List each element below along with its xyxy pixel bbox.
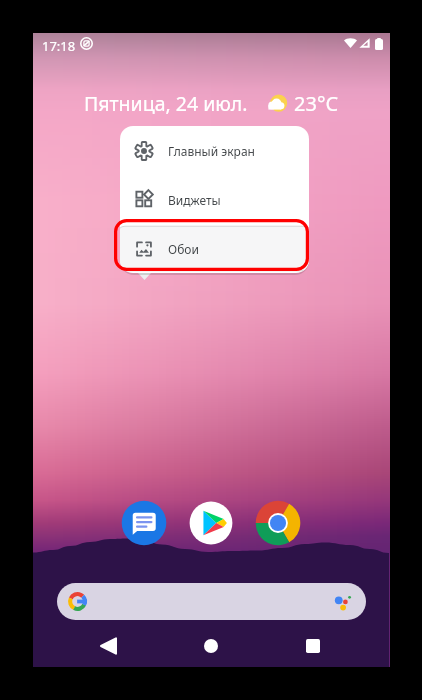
button[interactable]: Recents: [293, 626, 333, 666]
staticText: Пятница, 24 июл.: [84, 90, 248, 116]
button[interactable]: Play Store: [188, 500, 234, 546]
staticText: Виджеты: [168, 192, 221, 208]
button[interactable]: Виджеты: [120, 175, 309, 224]
button[interactable]: [57, 583, 366, 620]
button[interactable]: Chrome: [255, 500, 301, 546]
staticText: Главный экран: [168, 143, 255, 159]
button[interactable]: Back: [88, 626, 128, 666]
staticText: 17:18: [42, 37, 76, 55]
button[interactable]: Home: [191, 626, 231, 666]
button[interactable]: Обои: [120, 224, 309, 273]
staticText: Обои: [168, 241, 199, 257]
button[interactable]: Пятница, 24 июл.: [33, 90, 389, 116]
button[interactable]: Messages: [121, 500, 167, 546]
staticText: 23°C: [294, 90, 339, 116]
button[interactable]: Главный экран: [120, 126, 309, 175]
